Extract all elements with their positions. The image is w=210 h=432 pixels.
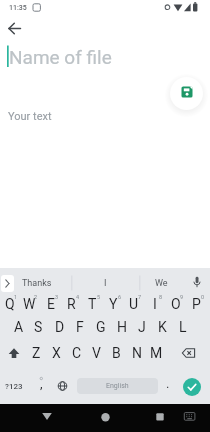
staticText: C <box>72 345 82 361</box>
button[interactable]: . <box>160 373 176 393</box>
button[interactable]: ?123 <box>1 374 27 398</box>
staticText: . <box>166 376 170 391</box>
staticText: T <box>88 296 97 312</box>
button[interactable]: C <box>66 341 87 365</box>
staticText: 4 <box>76 294 80 300</box>
button[interactable]: N <box>126 341 147 365</box>
button[interactable] <box>32 404 62 432</box>
button[interactable]: V <box>86 341 107 365</box>
staticText: W <box>23 296 36 312</box>
button[interactable] <box>170 77 203 110</box>
button[interactable]: T <box>82 292 103 316</box>
staticText: K <box>158 319 167 335</box>
button[interactable] <box>4 18 26 40</box>
staticText: O <box>171 296 181 312</box>
staticText: G <box>96 319 106 335</box>
staticText: L <box>179 319 187 335</box>
staticText: 0 <box>201 294 205 300</box>
button[interactable]: Y <box>103 292 124 316</box>
staticText: ?123 <box>5 382 23 391</box>
button[interactable]: We <box>140 272 182 294</box>
button[interactable]: A <box>8 315 29 339</box>
staticText: , <box>40 376 43 391</box>
button[interactable]: Q <box>0 292 20 316</box>
button[interactable] <box>52 374 73 398</box>
button[interactable] <box>4 342 26 365</box>
button[interactable]: English <box>77 378 158 394</box>
button[interactable]: G <box>90 315 111 339</box>
staticText: I <box>153 296 157 312</box>
staticText: B <box>112 345 121 361</box>
button[interactable]: F <box>69 315 90 339</box>
button[interactable]: D <box>49 315 70 339</box>
button[interactable] <box>145 404 175 432</box>
button[interactable]: X <box>46 341 67 365</box>
button[interactable]: J <box>131 315 152 339</box>
staticText: Your text <box>8 110 52 123</box>
staticText: U <box>129 296 139 312</box>
staticText: R <box>67 296 76 312</box>
button[interactable]: W <box>19 292 40 316</box>
button[interactable]: , <box>33 373 49 393</box>
button[interactable]: H <box>111 315 132 339</box>
button[interactable] <box>90 404 120 432</box>
staticText: English <box>106 382 129 390</box>
staticText: We <box>155 278 168 289</box>
staticText: P <box>192 296 201 312</box>
staticText: V <box>92 345 101 361</box>
staticText: D <box>55 319 65 335</box>
staticText: 1 <box>14 294 18 300</box>
staticText: J <box>138 319 146 335</box>
button[interactable] <box>180 404 200 432</box>
button[interactable]: O <box>165 292 186 316</box>
staticText: H <box>117 319 127 335</box>
button[interactable] <box>183 378 201 396</box>
button[interactable]: M <box>146 341 167 365</box>
staticText: F <box>76 319 84 335</box>
staticText: 5 <box>97 294 101 300</box>
staticText: 7 <box>138 294 142 300</box>
staticText: 3 <box>55 294 59 300</box>
button[interactable] <box>1 275 14 292</box>
button[interactable]: I <box>144 292 165 316</box>
staticText: Q <box>5 296 15 312</box>
staticText: S <box>34 319 43 335</box>
button[interactable]: R <box>61 292 82 316</box>
button[interactable]: K <box>152 315 173 339</box>
staticText: 2 <box>34 294 38 300</box>
staticText: N <box>132 345 142 361</box>
button[interactable]: Z <box>26 341 47 365</box>
button[interactable]: E <box>40 292 61 316</box>
staticText: 6 <box>118 294 122 300</box>
staticText: Z <box>32 345 41 361</box>
button[interactable]: P <box>186 292 207 316</box>
button[interactable]: L <box>172 315 193 339</box>
button[interactable]: I <box>72 272 138 294</box>
staticText: Thanks <box>22 278 52 289</box>
staticText: X <box>52 345 61 361</box>
button[interactable]: Thanks <box>9 272 65 294</box>
staticText: 8 <box>159 294 163 300</box>
button[interactable]: U <box>123 292 144 316</box>
button[interactable] <box>179 342 205 365</box>
staticText: 9 <box>180 294 184 300</box>
staticText: Name of file <box>9 46 112 68</box>
button[interactable]: S <box>28 315 49 339</box>
staticText: E <box>47 296 55 312</box>
staticText: 11:35 <box>9 4 27 12</box>
button[interactable]: B <box>106 341 127 365</box>
button[interactable] <box>186 272 208 294</box>
staticText: A <box>14 319 24 335</box>
staticText: M <box>150 345 163 361</box>
staticText: Y <box>109 296 118 312</box>
staticText: I <box>104 278 107 289</box>
